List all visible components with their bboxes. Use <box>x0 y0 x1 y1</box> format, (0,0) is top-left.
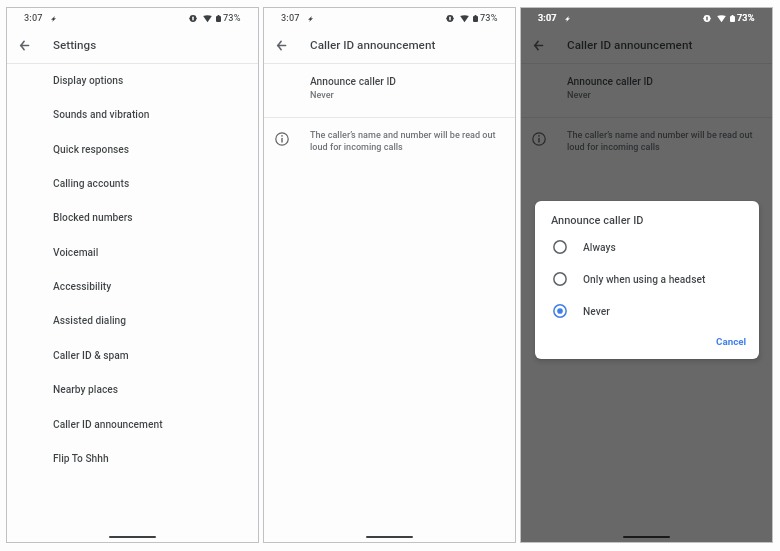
staticText: Voicemail <box>53 247 99 259</box>
button[interactable]: Flip To Shhh <box>6 442 259 476</box>
button[interactable]: Voicemail <box>6 236 259 270</box>
button[interactable]: Sounds and vibration <box>6 98 259 132</box>
staticText: Nearby places <box>53 384 119 396</box>
button[interactable]: Caller ID & spam <box>6 339 259 373</box>
button[interactable]: Display options <box>6 64 259 98</box>
staticText: The caller’s name and number will be rea… <box>310 130 515 152</box>
staticText: 3:07 <box>24 12 43 23</box>
staticText: Display options <box>53 75 124 87</box>
staticText: Calling accounts <box>53 178 130 190</box>
button[interactable]: Announce caller ID <box>263 64 516 117</box>
button[interactable]: Back <box>271 35 292 56</box>
staticText: Never <box>567 90 591 101</box>
button[interactable]: Blocked numbers <box>6 201 259 235</box>
button[interactable]: Cancel <box>710 331 753 352</box>
staticText: Never <box>310 90 334 101</box>
button[interactable]: Back <box>14 35 35 56</box>
staticText: Caller ID announcement <box>53 419 163 431</box>
staticText: Always <box>583 241 616 253</box>
staticText: Assisted dialing <box>53 315 127 327</box>
button[interactable]: Assisted dialing <box>6 304 259 338</box>
staticText: Caller ID announcement <box>310 38 436 52</box>
staticText: Settings <box>53 38 97 52</box>
staticText: Flip To Shhh <box>53 453 109 465</box>
button[interactable]: Never <box>535 295 759 327</box>
button[interactable]: Announce caller ID <box>520 64 773 117</box>
staticText: 3:07 <box>538 12 557 23</box>
staticText: 73% <box>223 12 241 23</box>
staticText: Blocked numbers <box>53 212 133 224</box>
staticText: The caller’s name and number will be rea… <box>567 130 772 152</box>
button[interactable]: Caller ID announcement <box>6 408 259 442</box>
button[interactable]: Only when using a headset <box>535 263 759 295</box>
staticText: Never <box>583 305 610 317</box>
staticText: Only when using a headset <box>583 273 706 285</box>
staticText: Caller ID announcement <box>567 38 693 52</box>
button[interactable]: Calling accounts <box>6 167 259 201</box>
button[interactable]: Always <box>535 231 759 263</box>
staticText: Announce caller ID <box>310 75 397 87</box>
staticText: Announce caller ID <box>567 75 654 87</box>
button[interactable]: Quick responses <box>6 133 259 167</box>
staticText: Sounds and vibration <box>53 109 150 121</box>
button[interactable]: Back <box>528 35 549 56</box>
button[interactable]: Accessibility <box>6 270 259 304</box>
staticText: Cancel <box>716 336 747 347</box>
button[interactable]: Nearby places <box>6 373 259 407</box>
staticText: Accessibility <box>53 281 112 293</box>
staticText: Quick responses <box>53 144 130 156</box>
staticText: Announce caller ID <box>551 214 644 227</box>
staticText: 73% <box>737 12 755 23</box>
staticText: 73% <box>480 12 498 23</box>
staticText: 3:07 <box>281 12 300 23</box>
staticText: Caller ID & spam <box>53 350 129 362</box>
